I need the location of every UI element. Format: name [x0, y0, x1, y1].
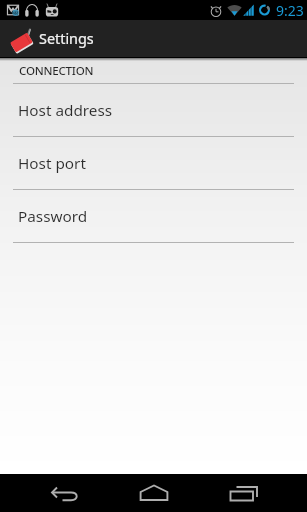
staticText: Settings: [39, 29, 94, 49]
button[interactable]: Settings: [0, 20, 307, 57]
button[interactable]: Recent apps: [212, 474, 274, 512]
button[interactable]: Home: [123, 474, 185, 512]
button[interactable]: Host port: [0, 137, 307, 190]
staticText: CONNECTION: [19, 63, 94, 79]
staticText: Host port: [18, 153, 86, 174]
button[interactable]: Password: [0, 190, 307, 243]
button[interactable]: Back: [33, 474, 95, 512]
staticText: Password: [18, 206, 88, 227]
button[interactable]: Host address: [0, 84, 307, 137]
staticText: Host address: [18, 100, 113, 121]
staticText: 9:23: [276, 1, 304, 20]
